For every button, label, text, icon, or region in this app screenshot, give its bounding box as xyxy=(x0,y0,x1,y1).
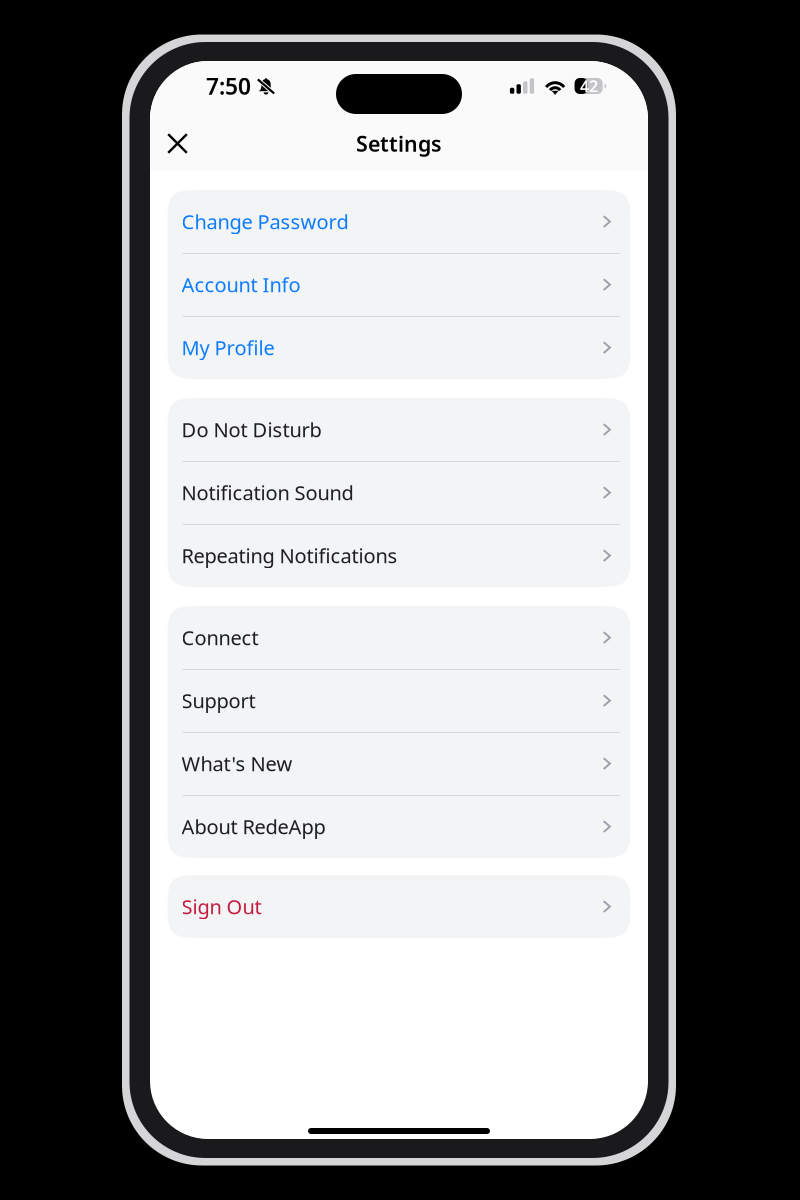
staticText: Settings xyxy=(356,129,442,158)
button[interactable]: About RedeApp xyxy=(167,795,630,858)
staticText: Change Password xyxy=(181,208,348,235)
button[interactable]: Support xyxy=(167,669,630,732)
staticText: Support xyxy=(181,687,255,714)
button[interactable]: Repeating Notifications xyxy=(167,524,630,587)
button[interactable]: Close xyxy=(156,122,199,165)
staticText: Do Not Disturb xyxy=(181,416,321,443)
staticText: 42 xyxy=(580,75,598,97)
button[interactable]: Connect xyxy=(167,606,630,669)
button[interactable]: Notification Sound xyxy=(167,461,630,524)
button[interactable]: Sign Out xyxy=(167,875,630,938)
button[interactable]: Change Password xyxy=(167,190,630,253)
staticText: Account Info xyxy=(181,271,300,298)
staticText: Notification Sound xyxy=(181,479,353,506)
button[interactable]: What's New xyxy=(167,732,630,795)
button[interactable]: My Profile xyxy=(167,316,630,379)
staticText: Repeating Notifications xyxy=(181,542,397,569)
staticText: Connect xyxy=(181,624,258,651)
staticText: My Profile xyxy=(181,334,274,361)
button[interactable]: Do Not Disturb xyxy=(167,398,630,461)
button[interactable]: Account Info xyxy=(167,253,630,316)
staticText: About RedeApp xyxy=(181,813,325,840)
staticText: Sign Out xyxy=(181,893,261,920)
staticText: What's New xyxy=(181,750,292,777)
staticText: 7:50 xyxy=(206,71,251,101)
